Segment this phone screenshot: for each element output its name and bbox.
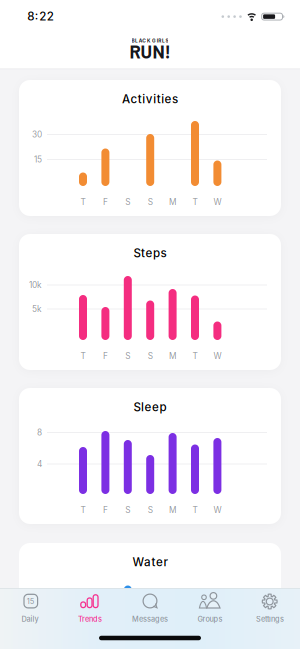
staticText: W <box>213 197 221 207</box>
staticText: Daily <box>21 615 38 623</box>
staticText: Steps <box>134 246 166 260</box>
staticText: 15 <box>27 597 35 606</box>
staticText: 8 <box>37 427 42 437</box>
button[interactable]: Trends <box>60 589 120 638</box>
staticText: 10k <box>29 280 42 290</box>
staticText: M <box>169 197 176 207</box>
staticText: W <box>213 351 221 361</box>
staticText: 30 <box>32 129 42 139</box>
staticText: S <box>148 505 153 515</box>
staticText: F <box>103 351 108 361</box>
staticText: RUN! <box>129 40 170 62</box>
staticText: M <box>169 505 176 515</box>
staticText: M <box>169 351 176 361</box>
staticText: S <box>148 351 153 361</box>
staticText: Trends <box>78 615 102 623</box>
staticText: T <box>80 351 85 361</box>
staticText: T <box>192 351 197 361</box>
staticText: T <box>80 197 85 207</box>
staticText: S <box>125 351 130 361</box>
staticText: Water <box>133 555 167 569</box>
staticText: S <box>148 197 153 207</box>
staticText: Activities <box>122 92 178 106</box>
staticText: 4 <box>37 459 42 469</box>
staticText: BLACK GIRLS <box>131 38 168 44</box>
staticText: W <box>213 505 221 515</box>
staticText: T <box>192 505 197 515</box>
staticText: Groups <box>197 615 222 623</box>
staticText: S <box>125 197 130 207</box>
staticText: S <box>125 505 130 515</box>
staticText: Messages <box>132 615 168 623</box>
staticText: 5k <box>32 304 42 314</box>
staticText: F <box>103 505 108 515</box>
staticText: T <box>80 505 85 515</box>
staticText: F <box>103 197 108 207</box>
staticText: T <box>192 197 197 207</box>
button[interactable]: Groups <box>180 589 240 638</box>
button[interactable]: Settings <box>240 589 300 638</box>
staticText: Sleep <box>134 400 166 414</box>
staticText: 15 <box>34 154 42 164</box>
staticText: 8:22 <box>27 9 54 23</box>
button[interactable]: 15 <box>0 589 60 638</box>
button[interactable]: Messages <box>120 589 180 638</box>
staticText: Settings <box>256 615 284 623</box>
